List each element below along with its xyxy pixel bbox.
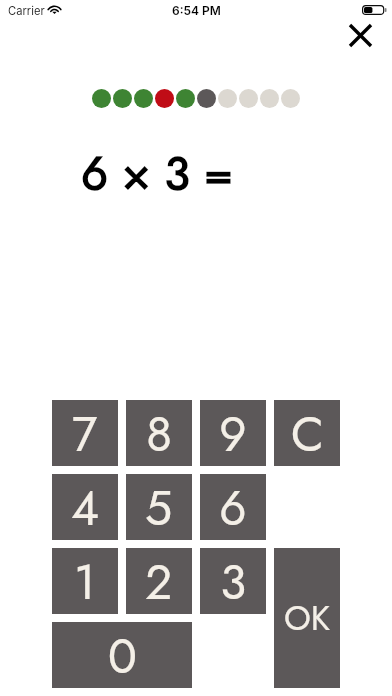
- button[interactable]: OK: [274, 548, 340, 688]
- staticText: 6 × 3 =: [81, 140, 233, 208]
- button[interactable]: Close: [338, 13, 382, 57]
- button[interactable]: 7: [52, 400, 118, 466]
- staticText: 6:54 PM: [172, 3, 221, 18]
- staticText: 6: [219, 474, 247, 540]
- staticText: 1: [74, 548, 96, 614]
- staticText: OK: [284, 594, 331, 643]
- staticText: 9: [219, 400, 247, 466]
- button[interactable]: 3: [200, 548, 266, 614]
- button[interactable]: 2: [126, 548, 192, 614]
- staticText: 4: [71, 474, 99, 540]
- staticText: Carrier: [8, 4, 45, 18]
- staticText: 3: [220, 548, 247, 614]
- button[interactable]: 6: [200, 474, 266, 540]
- button[interactable]: 0: [52, 622, 192, 688]
- staticText: 8: [146, 400, 173, 466]
- staticText: C: [291, 400, 324, 466]
- button[interactable]: 1: [52, 548, 118, 614]
- button[interactable]: 4: [52, 474, 118, 540]
- staticText: 0: [108, 622, 137, 688]
- staticText: 7: [72, 400, 98, 466]
- staticText: 2: [145, 548, 173, 614]
- button[interactable]: 8: [126, 400, 192, 466]
- button[interactable]: C: [274, 400, 340, 466]
- button[interactable]: 5: [126, 474, 192, 540]
- button[interactable]: 9: [200, 400, 266, 466]
- staticText: 5: [145, 474, 173, 540]
